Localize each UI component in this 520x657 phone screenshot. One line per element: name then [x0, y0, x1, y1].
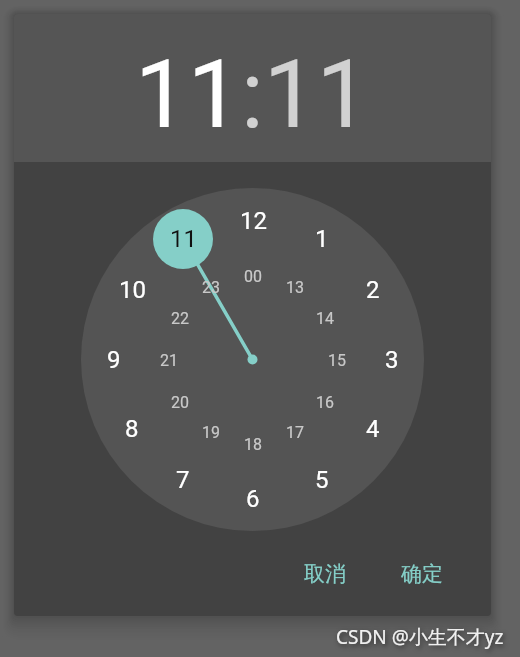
staticText: 7 [176, 466, 190, 494]
staticText: 4 [366, 415, 380, 443]
button[interactable]: :11 [241, 40, 370, 150]
button[interactable]: 11 [135, 40, 241, 150]
staticText: 1 [315, 225, 329, 253]
staticText: 14 [316, 309, 334, 328]
staticText: 8 [125, 415, 139, 443]
staticText: 19 [202, 423, 220, 442]
staticText: CSDN @小生不才yz [336, 624, 504, 650]
staticText: 12 [240, 207, 267, 235]
staticText: 15 [328, 351, 346, 370]
staticText: 10 [119, 276, 146, 304]
staticText: 9 [107, 346, 121, 374]
staticText: 21 [160, 351, 178, 370]
staticText: 23 [202, 278, 220, 297]
staticText: 22 [171, 309, 189, 328]
button[interactable]: 确定 [378, 550, 466, 598]
button[interactable]: 取消 [281, 550, 369, 598]
staticText: 16 [316, 393, 334, 412]
staticText: 17 [286, 423, 304, 442]
staticText: 取消 [304, 561, 346, 587]
staticText: 18 [244, 435, 262, 454]
staticText: 6 [246, 485, 260, 513]
staticText: 5 [315, 466, 329, 494]
staticText: 00 [244, 267, 262, 286]
staticText: 2 [366, 276, 380, 304]
staticText: 3 [385, 346, 399, 374]
staticText: 确定 [401, 561, 443, 587]
staticText: 11 [170, 225, 197, 253]
staticText: 13 [286, 278, 304, 297]
staticText: 20 [171, 393, 189, 412]
